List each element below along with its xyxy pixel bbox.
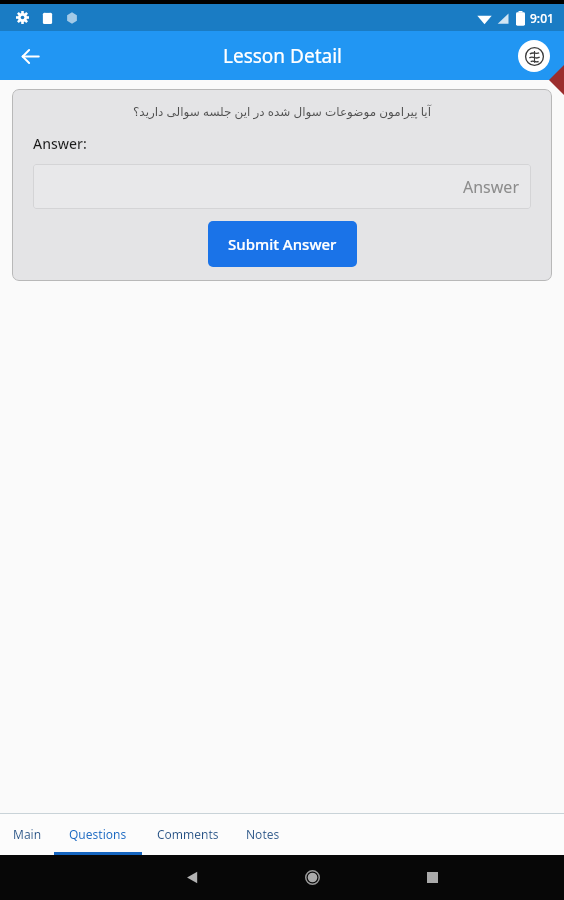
button[interactable]: Notes (234, 813, 292, 855)
button[interactable]: Back (9, 35, 51, 77)
staticText: Lesson Detail (223, 43, 342, 69)
button[interactable]: Submit Answer (208, 221, 357, 267)
staticText: Comments (157, 826, 219, 842)
staticText: Questions (69, 826, 127, 842)
button[interactable]: Questions (54, 813, 142, 855)
button[interactable]: App logo (518, 40, 550, 72)
button[interactable]: Main (0, 813, 54, 855)
staticText: Submit Answer (228, 234, 337, 254)
button[interactable]: Back (132, 855, 252, 900)
button[interactable]: Comments (142, 813, 234, 855)
staticText: آیا پیرامون موضوعات سوال شده در این جلسه… (33, 103, 531, 119)
staticText: Notes (246, 826, 280, 842)
staticText: Answer: (33, 134, 87, 153)
button[interactable]: Home (252, 855, 372, 900)
button[interactable]: Answer (33, 164, 531, 209)
staticText: 9:01 (530, 10, 554, 26)
staticText: Answer (463, 176, 519, 198)
button[interactable]: Recents (372, 855, 492, 900)
staticText: Main (13, 826, 42, 842)
